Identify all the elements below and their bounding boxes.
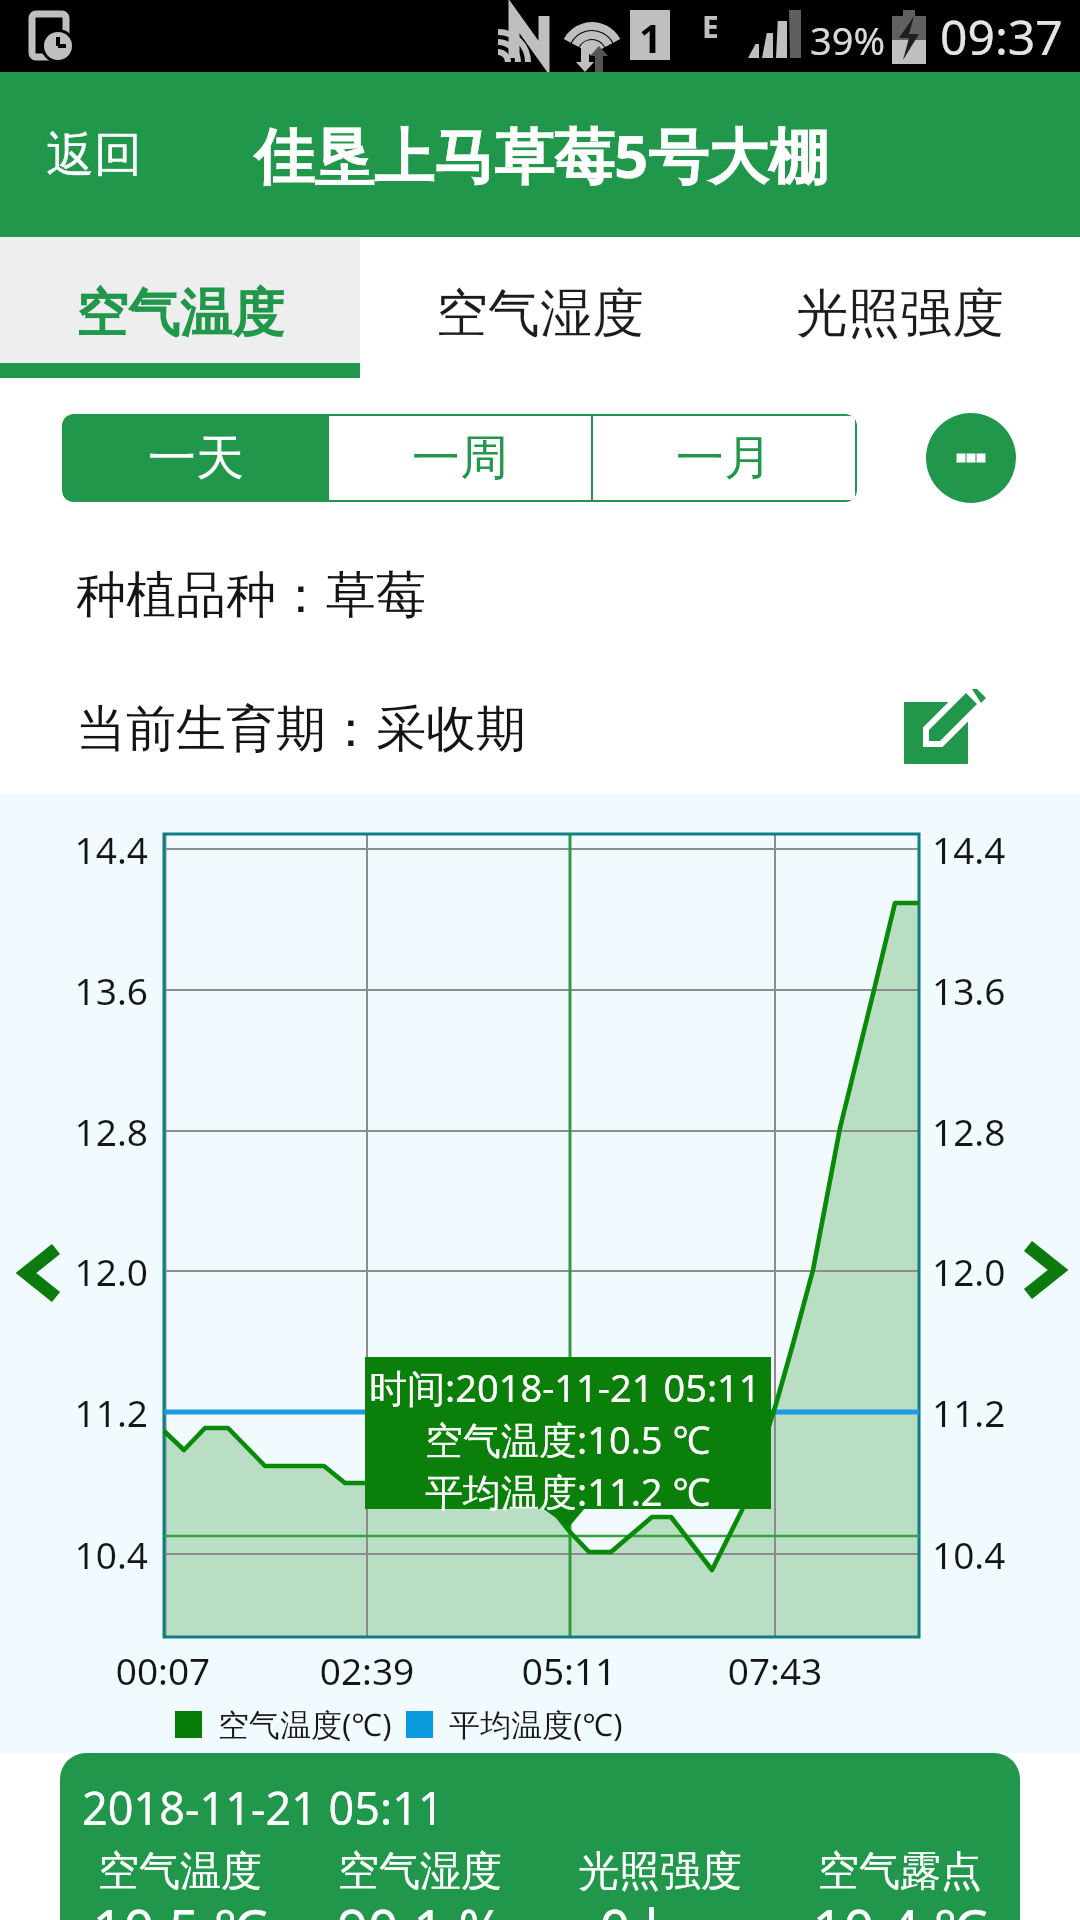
staticText: 空气温度 xyxy=(76,281,284,347)
staticText: 光照强度 xyxy=(540,1846,780,1898)
staticText: 07:43 xyxy=(713,1645,837,1695)
staticText: 00:07 xyxy=(101,1645,225,1695)
staticText: 09:37 xyxy=(940,4,1063,69)
button[interactable]: 返回 xyxy=(0,101,168,209)
staticText: 光照强度 xyxy=(796,281,1004,347)
button[interactable]: 空气湿度 xyxy=(360,237,720,378)
staticText: 05:11 xyxy=(507,1645,631,1695)
staticText: 佳垦上马草莓5号大棚 xyxy=(254,114,829,196)
button[interactable]: 一月 xyxy=(593,416,855,500)
button[interactable]: 光照强度 xyxy=(720,237,1080,378)
staticText: 一周 xyxy=(412,428,508,488)
staticText: 一天 xyxy=(148,428,244,488)
staticText: 空气湿度 xyxy=(436,281,644,347)
staticText: 10.4 xyxy=(58,1529,148,1579)
button[interactable]: 下一页 xyxy=(1006,1228,1076,1312)
staticText: 空气温度(℃) xyxy=(218,1703,392,1745)
staticText: 空气温度:10.5 ℃ xyxy=(425,1413,711,1465)
staticText: 种植品种：草莓 xyxy=(76,564,426,627)
button[interactable]: 上一页 xyxy=(4,1231,74,1315)
button[interactable]: 一周 xyxy=(329,416,591,500)
staticText: 10.4 xyxy=(932,1529,1006,1579)
staticText: 12.8 xyxy=(58,1106,148,1156)
staticText: 14.4 xyxy=(58,824,148,874)
staticText: 空气露点 xyxy=(780,1846,1020,1898)
staticText: 空气湿度 xyxy=(300,1846,540,1898)
staticText: 12.0 xyxy=(58,1246,148,1296)
staticText: 90.1 % xyxy=(300,1891,540,1920)
button[interactable]: 2018-11-21 05:11 xyxy=(60,1753,1020,1920)
staticText: 12.8 xyxy=(932,1106,1006,1156)
button[interactable]: 更多 xyxy=(926,413,1016,503)
button[interactable]: 空气温度 xyxy=(0,237,360,378)
staticText: 10.4 ℃ xyxy=(780,1891,1020,1920)
staticText: 02:39 xyxy=(305,1645,429,1695)
staticText: 当前生育期：采收期 xyxy=(76,698,526,761)
staticText: 10.5 ℃ xyxy=(60,1891,300,1920)
staticText: 1 xyxy=(639,10,662,60)
staticText: 空气温度 xyxy=(60,1846,300,1898)
staticText: 11.2 xyxy=(932,1387,1006,1437)
staticText: 时间:2018-11-21 05:11 xyxy=(369,1361,761,1413)
staticText: 平均温度(℃) xyxy=(449,1703,623,1745)
button[interactable]: 一天 xyxy=(64,416,327,500)
staticText: 14.4 xyxy=(932,824,1006,874)
staticText: E xyxy=(702,6,719,47)
staticText: 平均温度:11.2 ℃ xyxy=(425,1465,711,1517)
staticText: 一月 xyxy=(676,428,772,488)
staticText: 13.6 xyxy=(58,965,148,1015)
button[interactable]: 编辑 xyxy=(904,691,994,769)
staticText: 39% xyxy=(810,14,886,66)
staticText: 12.0 xyxy=(932,1246,1006,1296)
staticText: 13.6 xyxy=(932,965,1006,1015)
staticText: 11.2 xyxy=(58,1387,148,1437)
staticText: 2018-11-21 05:11 xyxy=(82,1777,444,1838)
staticText: 0 lux xyxy=(540,1891,780,1920)
